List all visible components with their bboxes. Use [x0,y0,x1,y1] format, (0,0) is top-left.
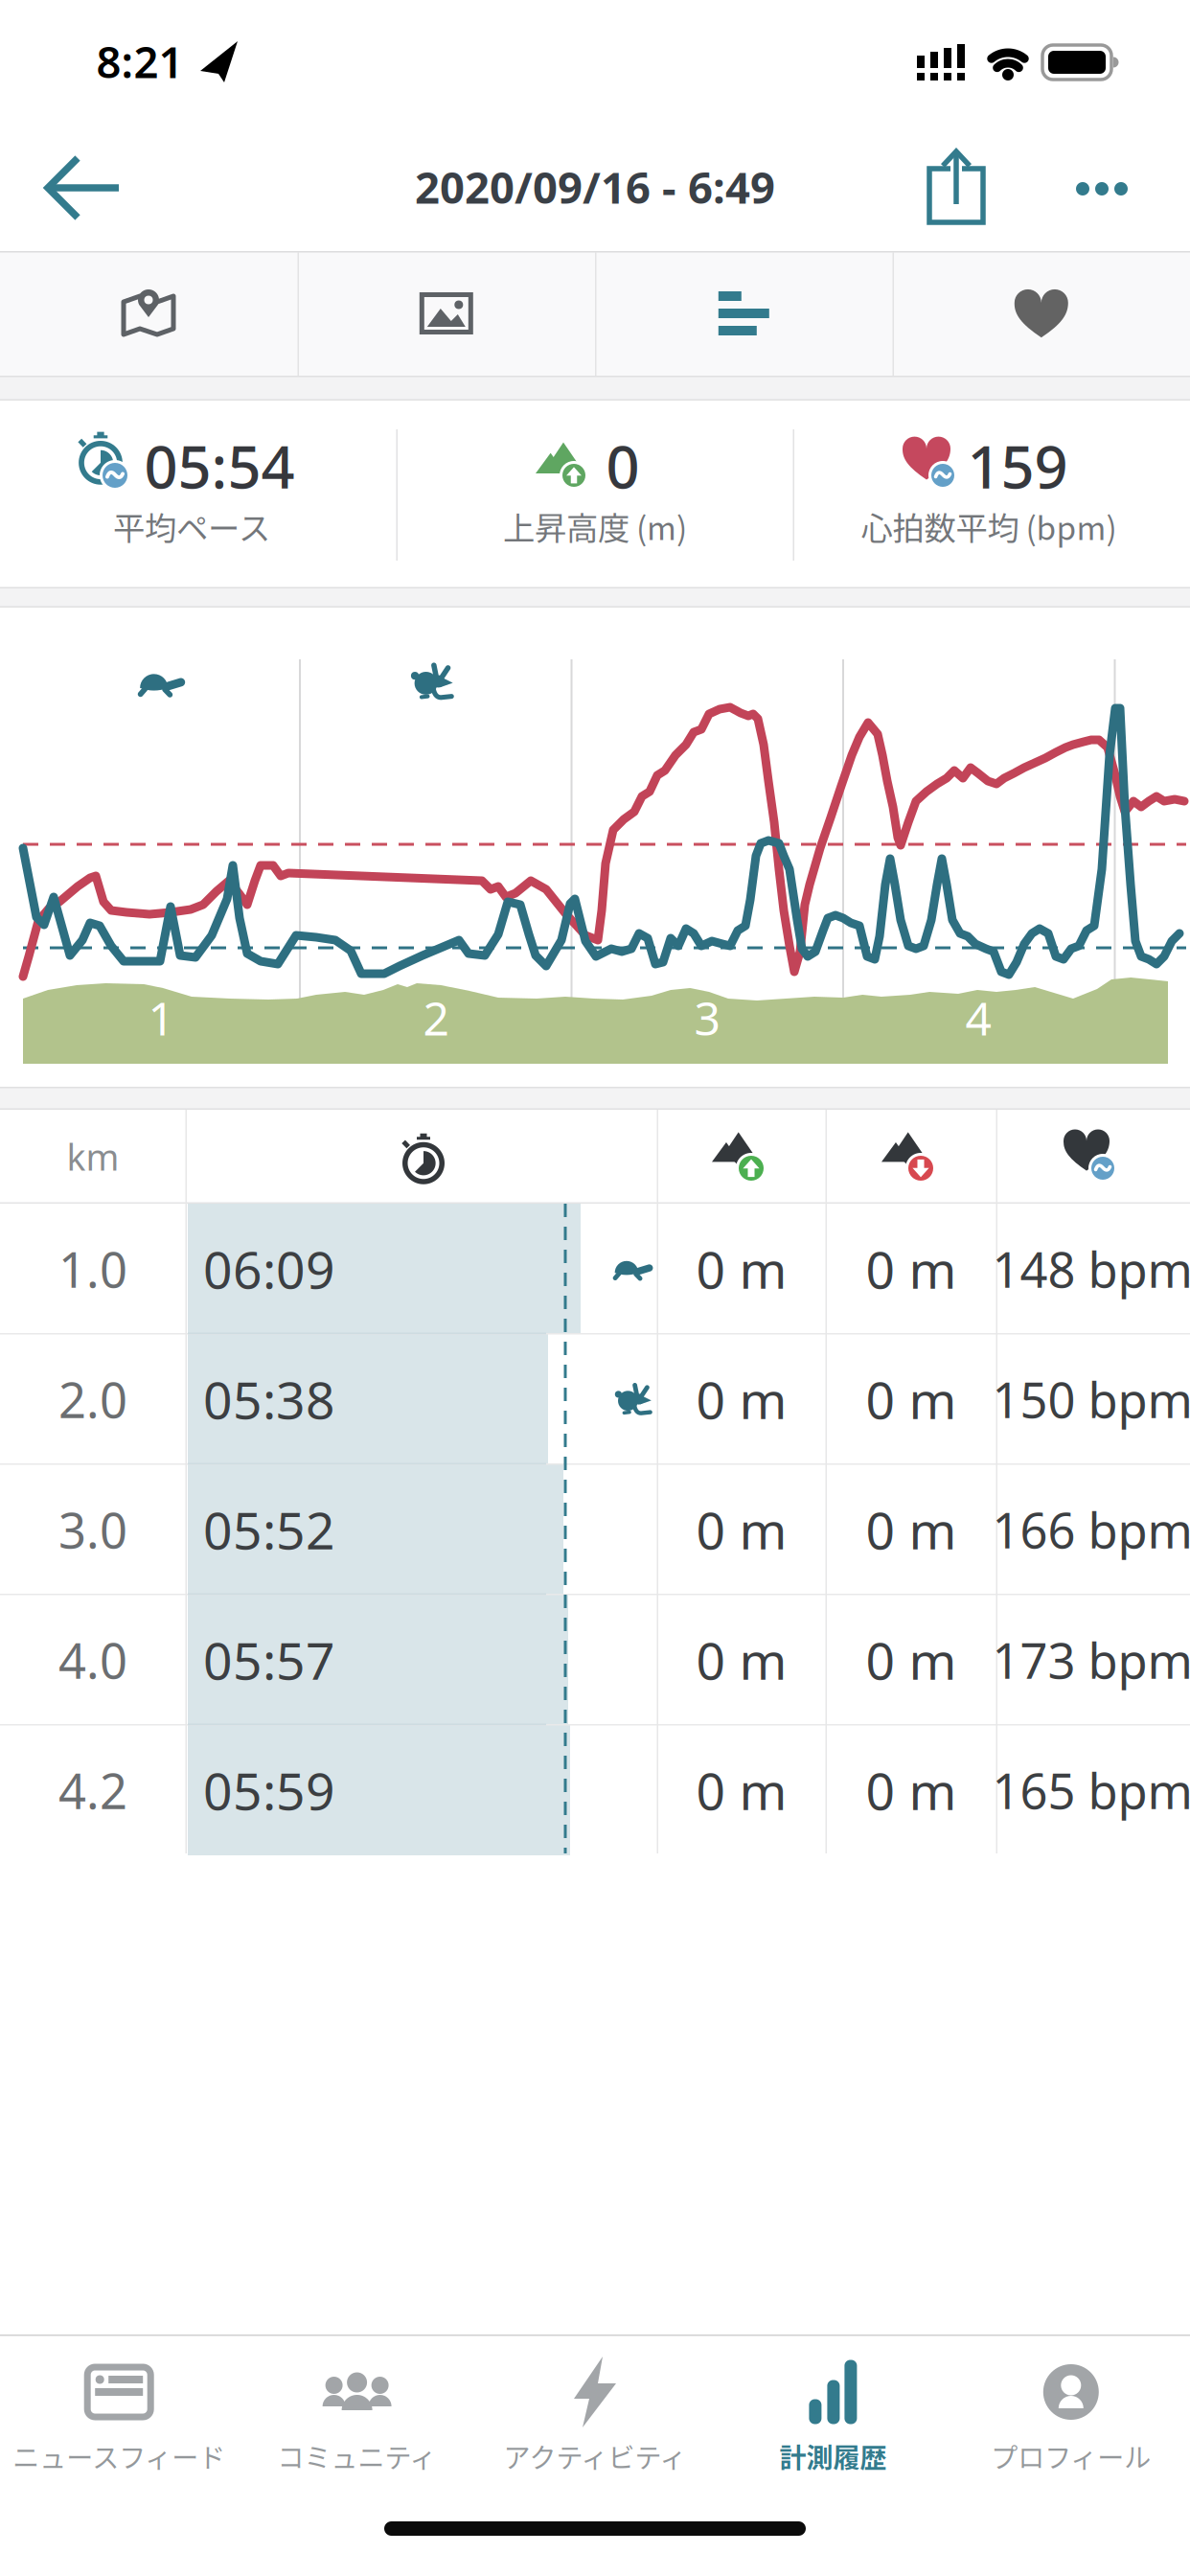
staticText: 計測履歴 [779,2437,887,2476]
staticText: 1.0 [58,1237,127,1301]
staticText: 06:09 [203,1235,335,1303]
staticText: 4 [965,987,991,1048]
staticText: 0 m [696,1365,787,1433]
staticText: 平均ペース [113,503,270,549]
button[interactable]: プロフィール [952,2334,1190,2499]
staticText: 159 [967,427,1068,505]
staticText: 166 bpm [992,1497,1190,1562]
button[interactable]: Share [918,147,995,229]
staticText: コミュニティ [277,2437,437,2476]
staticText: 0 m [696,1496,787,1563]
staticText: 05:59 [203,1756,335,1824]
staticText: 165 bpm [992,1758,1190,1822]
staticText: 0 m [696,1756,787,1824]
staticText: 8:21 [96,32,183,90]
staticText: km [67,1133,119,1180]
staticText: ニュースフィード [13,2437,225,2476]
button[interactable]: Back [34,145,130,231]
staticText: 4.2 [58,1758,127,1822]
staticText: 0 m [696,1235,787,1303]
staticText: 05:52 [203,1496,335,1563]
staticText: 2.0 [58,1367,127,1431]
staticText: 2 [423,987,449,1048]
staticText: 0 m [866,1365,957,1433]
button[interactable]: 計測履歴 [714,2334,952,2499]
staticText: 2020/09/16 - 6:49 [415,158,775,216]
staticText: 05:57 [203,1626,335,1694]
staticText: 173 bpm [992,1628,1190,1692]
staticText: 3.0 [58,1497,127,1562]
button[interactable]: Photos [298,252,595,375]
staticText: 0 m [866,1626,957,1694]
button[interactable]: コミュニティ [238,2334,476,2499]
staticText: 0 [606,427,640,505]
staticText: 148 bpm [992,1237,1190,1301]
button[interactable]: ニュースフィード [0,2334,238,2499]
staticText: 1 [148,987,174,1048]
staticText: 3 [694,987,720,1048]
staticText: 150 bpm [992,1367,1190,1431]
staticText: 05:38 [203,1365,335,1433]
staticText: プロフィール [991,2437,1151,2476]
staticText: 心拍数平均 (bpm) [861,503,1117,549]
button[interactable]: アクティビティ [476,2334,714,2499]
button[interactable]: More [1073,160,1131,218]
button[interactable]: Stats [595,252,892,375]
staticText: 0 m [696,1626,787,1694]
button[interactable]: Heart rate [893,252,1190,375]
staticText: アクティビティ [503,2437,687,2476]
staticText: 0 m [866,1756,957,1824]
staticText: 05:54 [144,427,295,505]
staticText: 0 m [866,1496,957,1563]
staticText: 0 m [866,1235,957,1303]
staticText: 上昇高度 (m) [503,503,687,549]
button[interactable]: Map [0,252,297,375]
staticText: 4.0 [58,1628,127,1692]
